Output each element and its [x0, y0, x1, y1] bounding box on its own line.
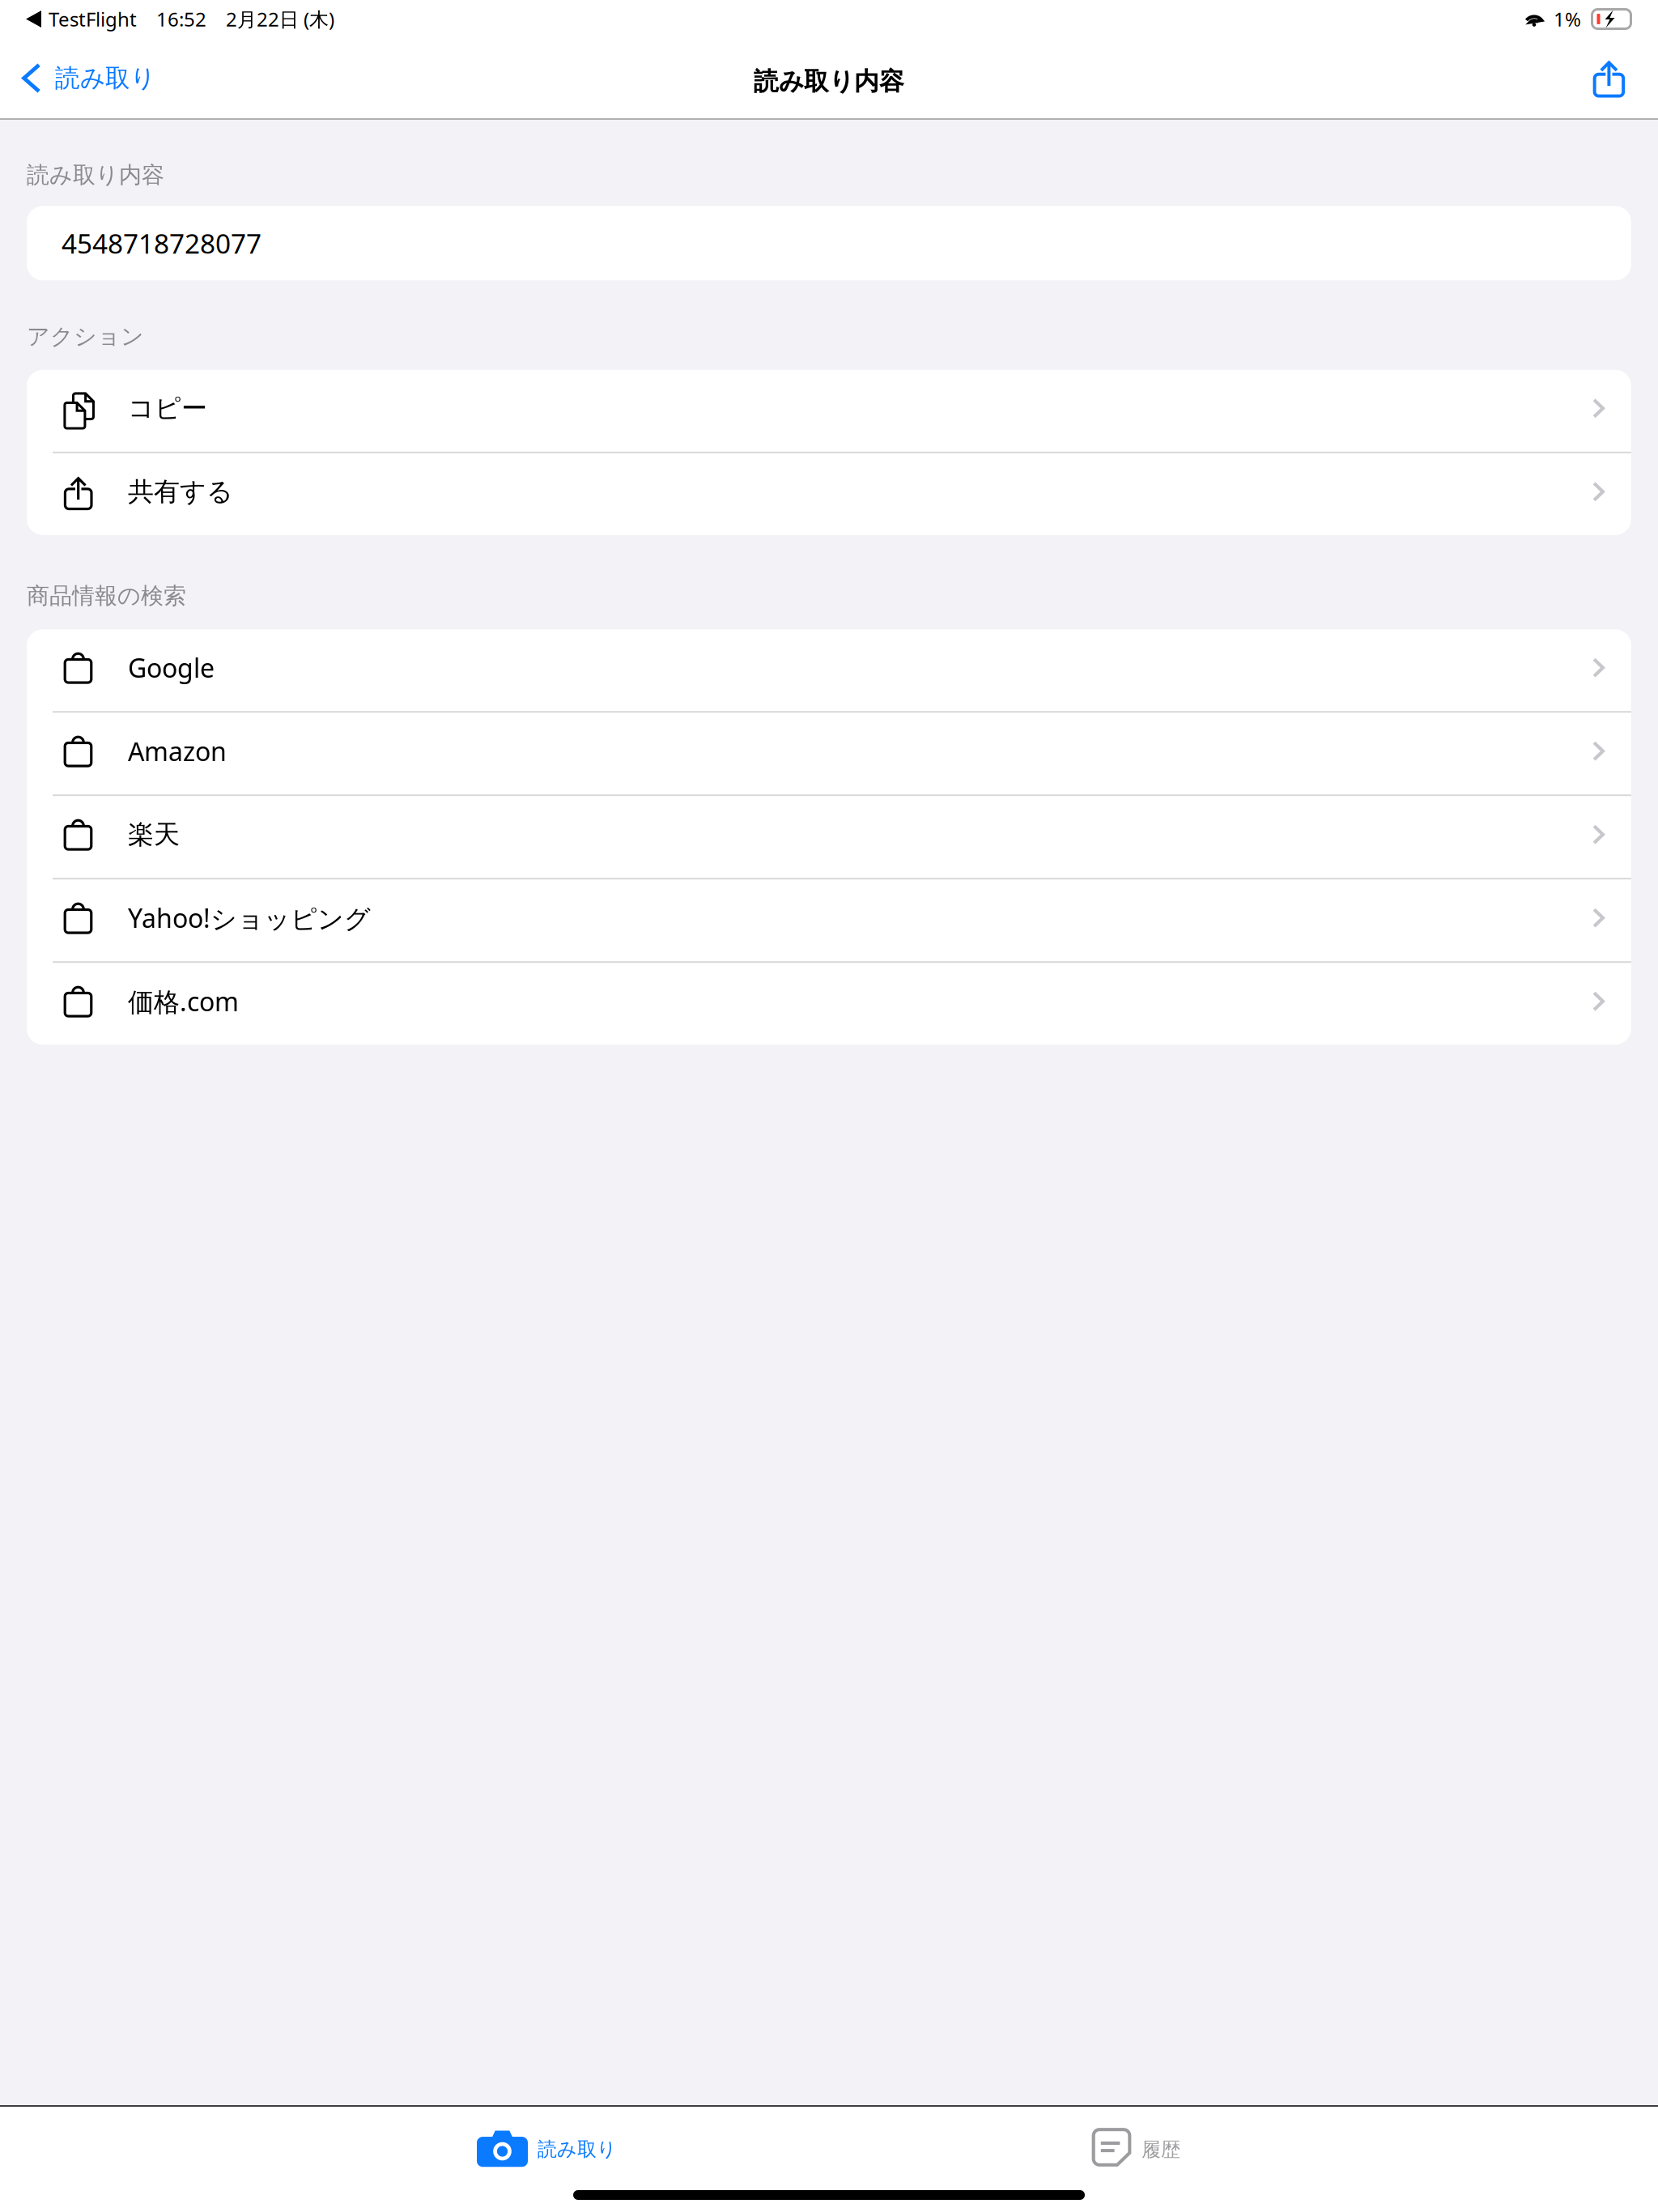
- staticText: 読み取り: [538, 2137, 617, 2161]
- staticText: 16:52: [156, 6, 206, 32]
- staticText: 商品情報の検索: [27, 582, 186, 610]
- button[interactable]: 読み取り: [0, 48, 155, 108]
- staticText: 読み取り内容: [754, 66, 904, 97]
- button[interactable]: コピー: [27, 370, 1631, 452]
- staticText: Yahoo!ショッピング: [128, 901, 371, 935]
- staticText: TestFlight: [49, 6, 137, 32]
- staticText: 履歴: [1141, 2138, 1180, 2162]
- staticText: Google: [128, 650, 215, 685]
- button[interactable]: 価格.com: [27, 963, 1631, 1045]
- staticText: 2月22日 (木): [226, 6, 334, 32]
- staticText: 1%: [1554, 6, 1581, 32]
- button[interactable]: 楽天: [27, 796, 1631, 878]
- staticText: 4548718728077: [62, 225, 261, 261]
- button[interactable]: Yahoo!ショッピング: [27, 879, 1631, 961]
- button[interactable]: Amazon: [27, 713, 1631, 794]
- staticText: 楽天: [128, 819, 180, 850]
- button[interactable]: 共有: [1592, 47, 1658, 109]
- staticText: 価格.com: [128, 984, 239, 1018]
- staticText: 読み取り: [55, 63, 155, 93]
- staticText: 共有する: [128, 476, 233, 508]
- staticText: 読み取り内容: [27, 161, 164, 189]
- button[interactable]: 読み取り: [454, 2101, 640, 2180]
- staticText: アクション: [27, 323, 144, 350]
- button[interactable]: 履歴: [1069, 2108, 1203, 2174]
- button[interactable]: Google: [27, 629, 1631, 711]
- staticText: Amazon: [128, 734, 227, 768]
- button[interactable]: 共有する: [27, 453, 1631, 535]
- staticText: コピー: [128, 392, 207, 424]
